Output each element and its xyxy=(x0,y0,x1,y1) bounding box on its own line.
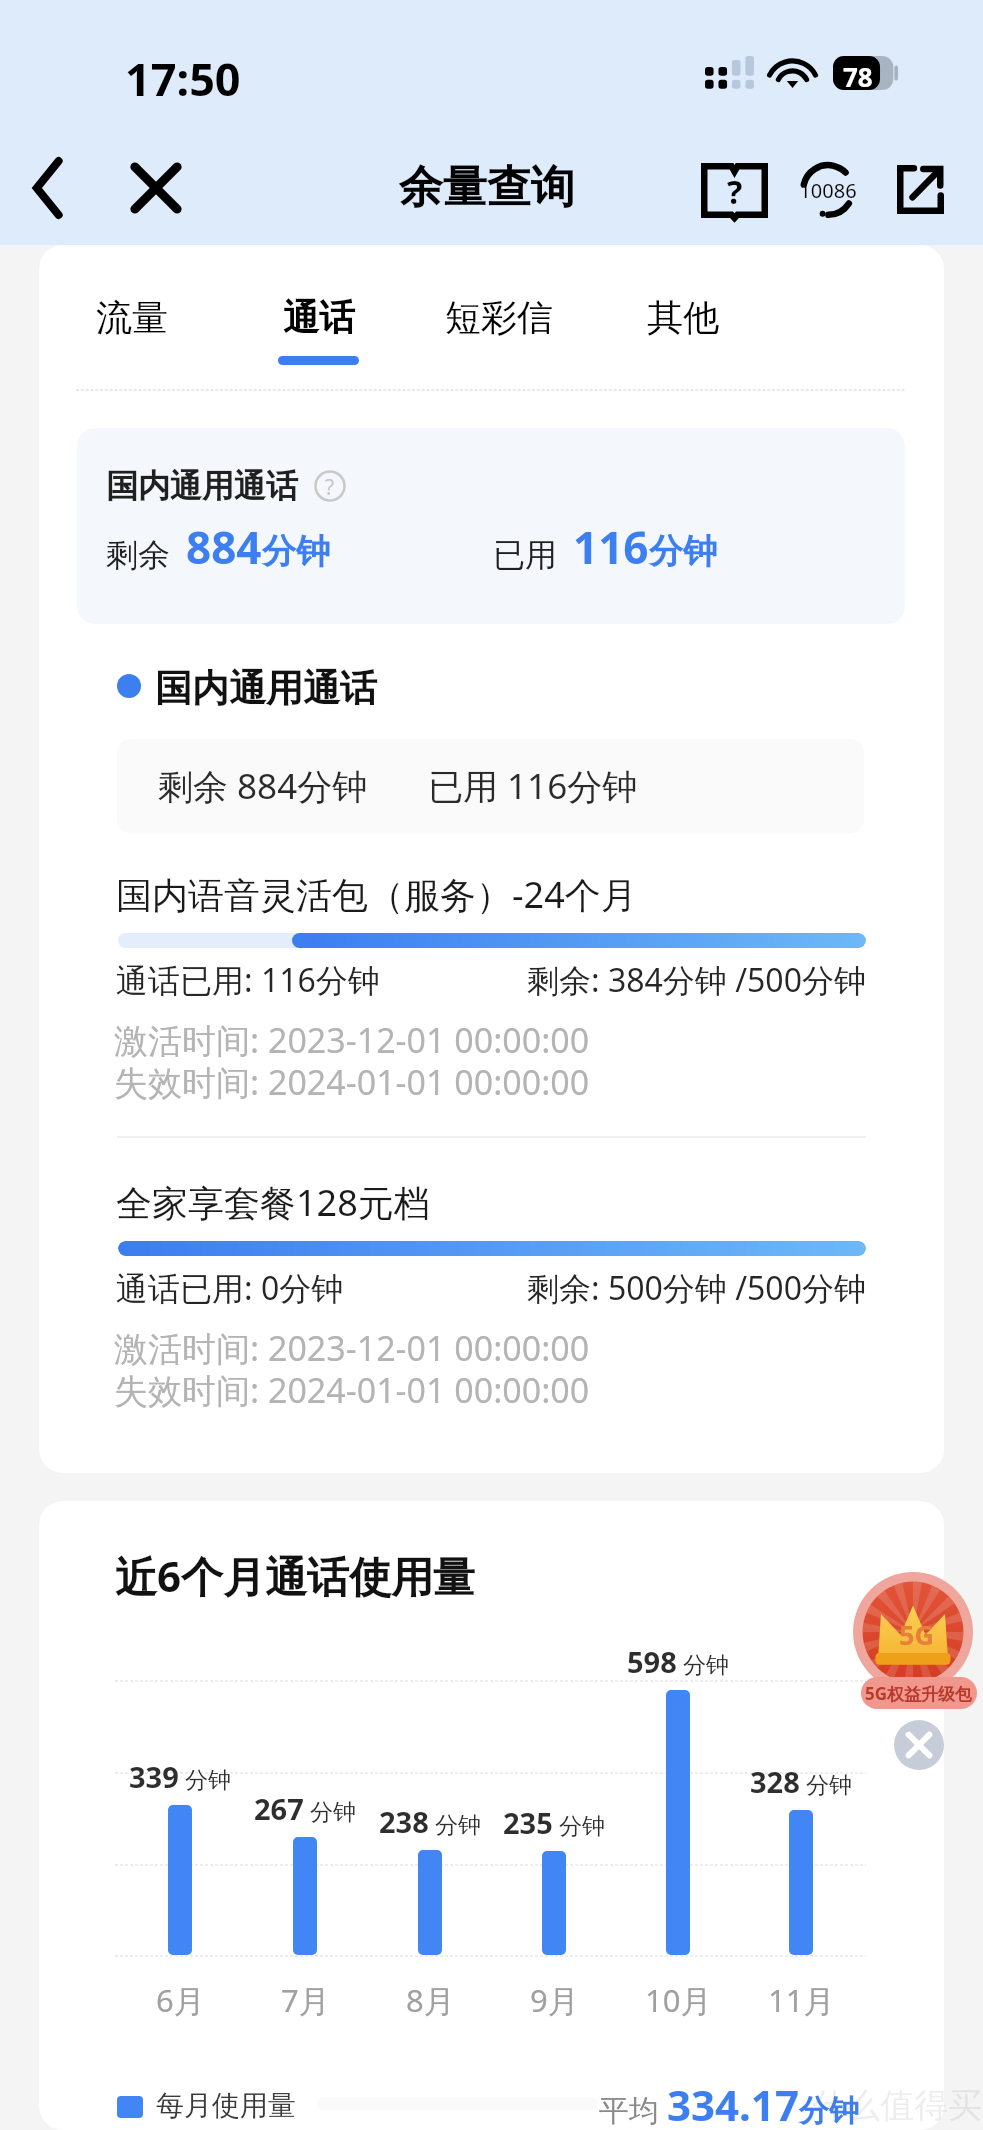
staticText: 通话 xyxy=(283,295,355,340)
button[interactable]: 5G upgrade pack xyxy=(853,1572,973,1692)
staticText: 全家享套餐128元档 xyxy=(116,1178,430,1227)
staticText: 失效时间: 2024-01-01 00:00:00 xyxy=(114,1059,590,1105)
button[interactable]: 其他 xyxy=(625,275,741,360)
staticText: 其他 xyxy=(647,295,719,340)
staticText: 剩余: 500分钟 /500分钟 xyxy=(527,1266,866,1310)
staticText: 10086 xyxy=(799,177,857,204)
staticText: 流量 xyxy=(96,295,168,340)
staticText: 分钟 xyxy=(185,1766,231,1795)
button[interactable] xyxy=(110,860,870,1055)
staticText: ? xyxy=(325,473,335,502)
staticText: 国内语音灵活包（服务）-24个月 xyxy=(116,870,637,919)
staticText: 235 xyxy=(503,1803,553,1842)
staticText: 238 xyxy=(379,1802,429,1841)
button[interactable]: Close ad xyxy=(894,1720,944,1770)
staticText: 近6个月通话使用量 xyxy=(115,1547,476,1604)
staticText: 116 xyxy=(573,517,649,577)
button[interactable]: Call 10086 xyxy=(790,152,866,228)
staticText: 什么值得买 xyxy=(812,2084,982,2127)
staticText: 剩余 884分钟 xyxy=(158,762,368,810)
staticText: 分钟 xyxy=(310,1798,356,1827)
staticText: 剩余 xyxy=(106,535,170,575)
button[interactable]: Help xyxy=(689,152,779,228)
staticText: 已用 116分钟 xyxy=(428,762,638,810)
staticText: 334.17 xyxy=(667,2076,799,2130)
button[interactable] xyxy=(77,428,905,624)
staticText: 激活时间: 2023-12-01 00:00:00 xyxy=(114,1325,590,1371)
staticText: 10月 xyxy=(645,1979,712,2021)
button[interactable]: 每月使用量 xyxy=(110,2084,303,2129)
button[interactable]: More info xyxy=(314,470,346,502)
staticText: 剩余: 384分钟 /500分钟 xyxy=(527,958,866,1002)
staticText: 短彩信 xyxy=(445,295,553,340)
staticText: 分钟 xyxy=(435,1811,481,1840)
button[interactable]: 流量 xyxy=(74,275,190,360)
staticText: 国内通用通话 xyxy=(106,466,298,506)
staticText: 余量查询 xyxy=(399,160,575,215)
staticText: 78 xyxy=(843,59,873,93)
staticText: 通话已用: 116分钟 xyxy=(116,958,380,1002)
staticText: 598 xyxy=(627,1642,677,1681)
staticText: 国内通用通话 xyxy=(155,665,377,712)
staticText: 267 xyxy=(254,1789,304,1828)
staticText: 分钟 xyxy=(559,1812,605,1841)
button[interactable] xyxy=(110,1168,870,1363)
staticText: 每月使用量 xyxy=(156,2088,296,2123)
staticText: 9月 xyxy=(530,1979,579,2021)
staticText: 通话已用: 0分钟 xyxy=(116,1266,344,1310)
staticText: 激活时间: 2023-12-01 00:00:00 xyxy=(114,1017,590,1063)
staticText: 分钟 xyxy=(683,1651,729,1680)
staticText: 8月 xyxy=(406,1979,455,2021)
staticText: 分钟 xyxy=(262,530,330,573)
button[interactable]: Share xyxy=(882,151,958,227)
button[interactable]: 短彩信 xyxy=(423,275,575,360)
button[interactable]: 通话 xyxy=(256,275,381,385)
staticText: 5G xyxy=(899,1616,934,1653)
staticText: 884 xyxy=(186,517,262,577)
button[interactable]: Close xyxy=(121,153,191,223)
button[interactable] xyxy=(117,739,864,833)
button[interactable]: Back xyxy=(13,153,83,223)
staticText: 平均 xyxy=(599,2089,667,2130)
staticText: ? xyxy=(727,170,743,214)
staticText: 失效时间: 2024-01-01 00:00:00 xyxy=(114,1367,590,1413)
staticText: 分钟 xyxy=(806,1771,852,1800)
staticText: 分钟 xyxy=(799,2092,859,2130)
staticText: 5G权益升级包 xyxy=(865,1682,973,1705)
staticText: 339 xyxy=(129,1757,179,1796)
staticText: 11月 xyxy=(768,1979,835,2021)
staticText: 17:50 xyxy=(125,48,241,109)
staticText: 分钟 xyxy=(649,530,717,573)
staticText: 7月 xyxy=(281,1979,330,2021)
staticText: 已用 xyxy=(493,535,557,575)
staticText: 6月 xyxy=(156,1979,205,2021)
staticText: 328 xyxy=(750,1762,800,1801)
